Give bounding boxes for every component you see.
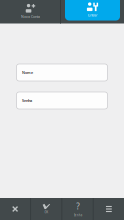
button[interactable]: Entrar bbox=[65, 0, 120, 20]
staticText: Senha bbox=[74, 213, 82, 217]
button[interactable]: Nome bbox=[16, 64, 107, 81]
staticText: Nova Conta bbox=[21, 14, 40, 19]
button[interactable]: Senha bbox=[16, 92, 107, 109]
staticText: Senha bbox=[22, 98, 32, 103]
staticText: Entrar bbox=[88, 13, 97, 18]
button[interactable]: Nova Conta bbox=[0, 0, 61, 23]
staticText: Nome bbox=[22, 70, 33, 75]
button[interactable]: Menu bbox=[94, 198, 124, 220]
button[interactable]: OK bbox=[31, 198, 61, 220]
button[interactable]: Cancelar bbox=[0, 198, 30, 220]
staticText: ? bbox=[76, 201, 79, 212]
button[interactable]: Senha bbox=[62, 198, 93, 220]
staticText: OK bbox=[44, 210, 48, 214]
